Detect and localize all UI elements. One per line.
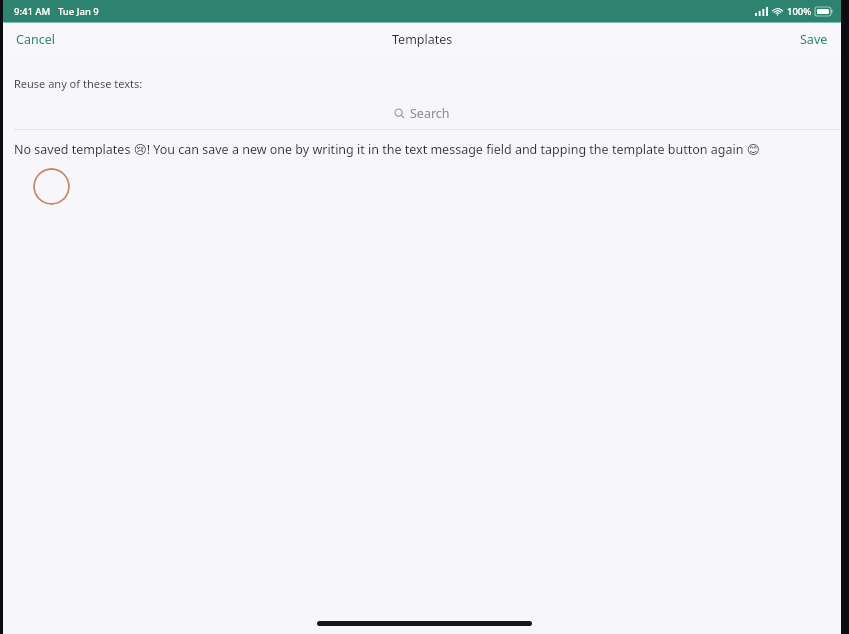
button[interactable]: Save [787,25,841,54]
staticText: No saved templates 😢! You can save a new… [14,141,760,158]
staticText: Reuse any of these texts: [14,76,143,91]
staticText: Save [800,31,828,48]
staticText: Search [410,105,450,122]
button[interactable]: Search [3,101,841,126]
staticText: Tue Jan 9 [58,5,99,18]
staticText: Templates [392,31,453,48]
button[interactable]: Cancel [3,25,68,54]
staticText: 100% [787,5,812,18]
button[interactable]: Add template [33,168,70,205]
staticText: 9:41 AM [14,5,51,18]
staticText: Cancel [16,31,55,48]
